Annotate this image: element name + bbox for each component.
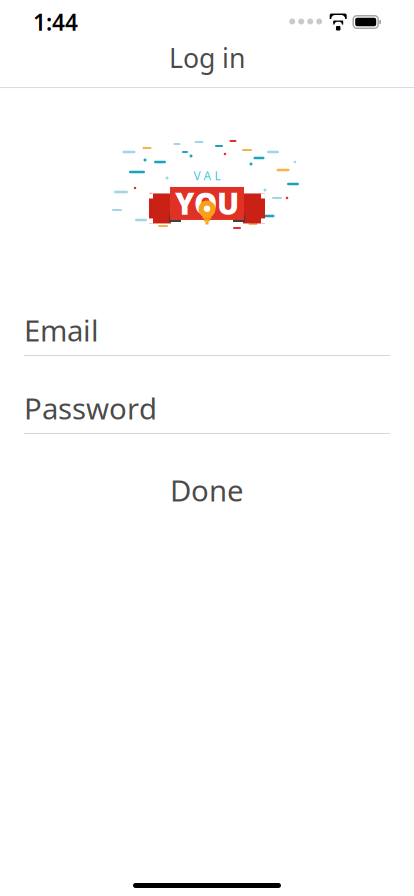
button[interactable]: Done [24, 468, 390, 512]
staticText: V A L [193, 167, 220, 183]
button[interactable]: Password [24, 390, 390, 434]
staticText: Done [170, 470, 244, 509]
staticText: YOU [175, 184, 239, 223]
staticText: Log in [169, 40, 245, 75]
staticText: Email [24, 310, 99, 349]
staticText: Password [24, 388, 157, 427]
staticText: 1:44 [33, 7, 78, 37]
button[interactable]: Email [24, 312, 390, 356]
